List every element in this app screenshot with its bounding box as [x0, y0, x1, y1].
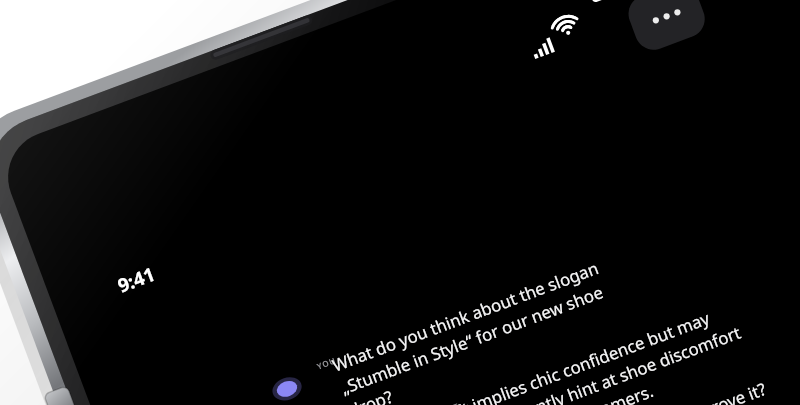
button[interactable]: ChatGPT conversation on iPhone: [0, 0, 800, 405]
